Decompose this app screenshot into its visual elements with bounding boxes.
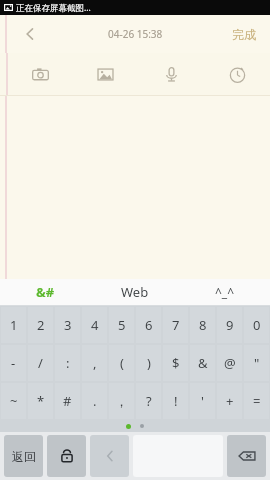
button[interactable]: Reminder [204,53,270,95]
button[interactable]: 1 [1,307,26,343]
staticText: $ [172,354,180,372]
staticText: - [11,354,16,372]
staticText: 返回 [12,449,36,464]
button[interactable]: 3 [55,307,80,343]
staticText: 0 [253,316,261,334]
staticText: 7 [172,316,180,334]
button[interactable]: Camera [8,53,73,95]
staticText: ^_^ [215,284,235,300]
button[interactable]: / [28,345,53,381]
button[interactable]: Back [16,20,44,48]
button[interactable]: + [217,383,242,419]
staticText: 04-26 15:38 [108,27,163,41]
button[interactable]: Gallery [73,53,138,95]
button[interactable]: 0 [244,307,269,343]
button[interactable]: &# [0,279,90,305]
button[interactable]: 5 [109,307,134,343]
button[interactable]: Voice [138,53,204,95]
staticText: 6 [145,316,153,334]
staticText: 完成 [232,27,256,42]
button[interactable]: Web [90,279,180,305]
staticText: 5 [118,316,126,334]
staticText: ! [174,392,178,410]
button[interactable]: * [28,383,53,419]
button[interactable]: ^_^ [180,279,270,305]
staticText: 正在保存屏幕截图... [16,2,91,14]
button[interactable]: ! [163,383,188,419]
staticText: . [93,392,97,410]
staticText: ( [120,354,124,372]
button[interactable]: ， [109,383,134,419]
button[interactable]: 9 [217,307,242,343]
staticText: ? [146,392,152,410]
staticText: # [63,392,72,410]
button[interactable]: Delete [227,435,266,477]
staticText: Web [121,283,149,301]
staticText: & [198,354,208,372]
button[interactable]: ' [190,383,215,419]
staticText: 4 [91,316,99,334]
button[interactable]: 7 [163,307,188,343]
button[interactable]: ? [136,383,161,419]
staticText: 1 [10,316,18,334]
staticText: ~ [10,392,18,410]
staticText: = [253,392,261,410]
staticText: 8 [199,316,207,334]
button[interactable]: @ [217,345,242,381]
staticText: &# [36,283,55,301]
staticText: 9 [226,316,234,334]
staticText: " [254,354,260,372]
button[interactable]: Lock [47,435,86,477]
staticText: ) [147,354,151,372]
button[interactable]: ( [109,345,134,381]
staticText: * [37,392,45,410]
staticText: ， [115,393,128,409]
button[interactable]: 8 [190,307,215,343]
staticText: + [226,392,234,410]
staticText: ' [201,392,204,410]
staticText: 3 [64,316,72,334]
button[interactable]: : [55,345,80,381]
button[interactable]: ~ [1,383,26,419]
button[interactable]: = [244,383,269,419]
button[interactable]: . [82,383,107,419]
staticText: , [93,354,97,372]
staticText: @ [224,354,236,372]
button[interactable]: " [244,345,269,381]
button[interactable]: 返回 [4,435,43,477]
button[interactable]: 6 [136,307,161,343]
button[interactable]: ) [136,345,161,381]
staticText: 2 [37,316,45,334]
button[interactable]: 4 [82,307,107,343]
button[interactable]: 完成 [218,21,270,48]
button[interactable]: & [190,345,215,381]
button[interactable]: - [1,345,26,381]
button[interactable]: , [82,345,107,381]
button[interactable]: # [55,383,80,419]
button[interactable]: Previous [90,435,129,477]
staticText: / [38,354,43,372]
button[interactable]: 2 [28,307,53,343]
button[interactable]: $ [163,345,188,381]
staticText: : [66,354,70,372]
